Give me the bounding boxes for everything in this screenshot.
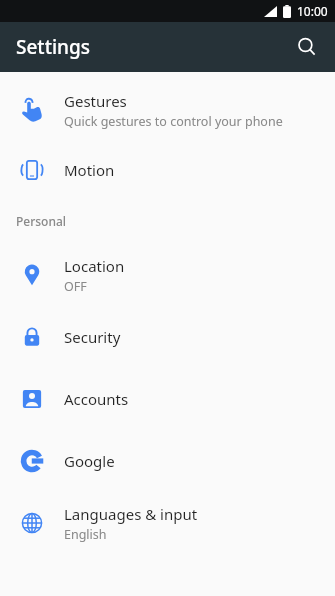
button[interactable]: Motion	[0, 141, 335, 198]
staticText: Quick gestures to control your phone	[64, 113, 283, 130]
button[interactable]: Google	[0, 430, 335, 492]
staticText: Accounts	[64, 389, 129, 409]
button[interactable]: Gestures	[0, 79, 335, 141]
staticText: Security	[64, 327, 121, 347]
staticText: 10:00	[297, 3, 328, 19]
staticText: Personal	[16, 213, 67, 229]
button[interactable]: Accounts	[0, 368, 335, 430]
button[interactable]: Languages & input	[0, 492, 335, 554]
button[interactable]: Search	[287, 27, 327, 67]
staticText: Location	[64, 256, 125, 276]
button[interactable]: Location	[0, 244, 335, 306]
staticText: Languages & input	[64, 504, 198, 524]
staticText: Settings	[16, 34, 90, 60]
staticText: Gestures	[64, 91, 127, 111]
staticText: Motion	[64, 160, 115, 180]
staticText: Google	[64, 451, 115, 471]
button[interactable]: Security	[0, 306, 335, 368]
staticText: OFF	[64, 278, 87, 295]
staticText: English	[64, 526, 107, 543]
